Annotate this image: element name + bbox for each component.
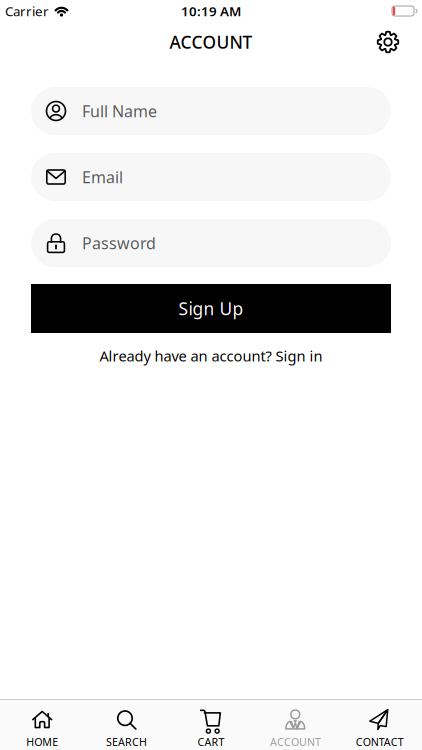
staticText: CONTACT bbox=[356, 735, 404, 749]
button[interactable]: Sign Up bbox=[31, 284, 391, 333]
staticText: ACCOUNT bbox=[169, 30, 252, 53]
staticText: Sign Up bbox=[178, 297, 243, 320]
button[interactable]: Email bbox=[31, 153, 391, 201]
button[interactable]: CONTACT bbox=[338, 707, 422, 749]
button[interactable]: Full Name bbox=[31, 87, 391, 135]
button[interactable]: ACCOUNT bbox=[253, 707, 338, 749]
staticText: Email bbox=[82, 166, 123, 188]
staticText: 10:19 AM bbox=[181, 2, 241, 20]
staticText: ACCOUNT bbox=[270, 735, 321, 749]
staticText: HOME bbox=[26, 735, 58, 749]
button[interactable] bbox=[377, 31, 399, 53]
button[interactable]: HOME bbox=[0, 707, 84, 749]
staticText: Full Name bbox=[82, 100, 157, 122]
button[interactable]: CART bbox=[169, 707, 253, 749]
button[interactable]: Password bbox=[31, 219, 391, 267]
staticText: Password bbox=[82, 232, 156, 254]
staticText: CART bbox=[197, 735, 224, 749]
staticText: Already have an account? Sign in bbox=[99, 346, 322, 365]
button[interactable]: SEARCH bbox=[84, 707, 169, 749]
staticText: Carrier bbox=[5, 2, 49, 20]
staticText: SEARCH bbox=[106, 735, 147, 749]
button[interactable]: Already have an account? Sign in bbox=[99, 346, 322, 365]
